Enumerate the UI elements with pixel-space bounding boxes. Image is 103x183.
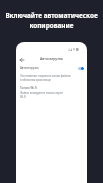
button[interactable]: Автозагрузка <box>20 65 84 71</box>
staticText: Только Wi-Fi <box>20 86 38 90</box>
staticText: Это позволит сохранять копии файлов в об… <box>20 74 71 82</box>
staticText: Автозагрузка <box>40 56 63 61</box>
staticText: Включайте автоматическое копирование <box>0 11 103 30</box>
button[interactable]: Back <box>17 55 26 64</box>
staticText: Файлы копируются только через Wi-Fi <box>20 91 63 99</box>
staticText: Автозагрузка <box>20 66 39 70</box>
